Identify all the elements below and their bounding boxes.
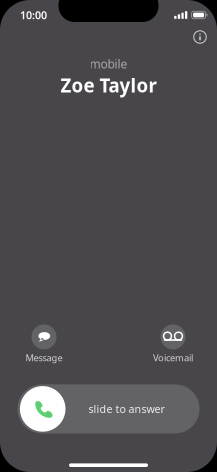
staticText: Message (25, 351, 62, 364)
staticText: 10:00 (20, 8, 47, 22)
button[interactable]: Call details (188, 25, 212, 49)
button[interactable]: Voicemail (135, 324, 211, 362)
staticText: slide to answer (88, 402, 164, 416)
button[interactable]: Message (6, 324, 82, 362)
staticText: Voicemail (153, 351, 193, 364)
staticText: mobile (89, 56, 127, 72)
staticText: Zoe Taylor (60, 73, 156, 98)
button[interactable]: slide to answer (17, 384, 199, 433)
